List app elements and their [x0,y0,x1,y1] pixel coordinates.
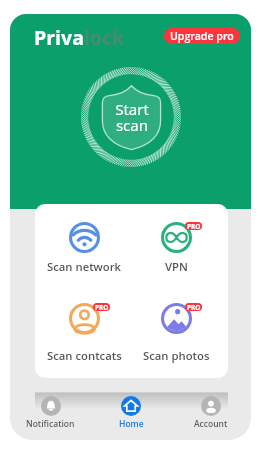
button[interactable]: PRO [131,303,221,364]
button[interactable]: PRO [131,222,221,275]
button[interactable]: Account [171,394,251,430]
button[interactable]: Notification [10,394,91,430]
staticText: PRO [95,303,109,311]
staticText: VPN [165,259,188,274]
staticText: Scan contcats [47,348,122,363]
staticText: Scan network [47,259,122,274]
staticText: Notification [26,418,75,430]
button[interactable]: Start scan [102,85,161,150]
staticText: Scan photos [143,348,210,363]
staticText: Upgrade pro [170,29,234,43]
staticText: PRO [187,222,201,230]
staticText: Start scan [115,99,149,136]
button[interactable]: PRO [39,303,129,364]
button[interactable]: Scan network [39,222,129,275]
button[interactable]: Home [91,394,171,430]
staticText: Home [119,418,144,430]
staticText: Priva [34,24,84,51]
staticText: lock [84,24,125,51]
staticText: Account [194,418,228,430]
staticText: PRO [187,303,201,311]
button[interactable]: Upgrade pro [164,28,240,44]
